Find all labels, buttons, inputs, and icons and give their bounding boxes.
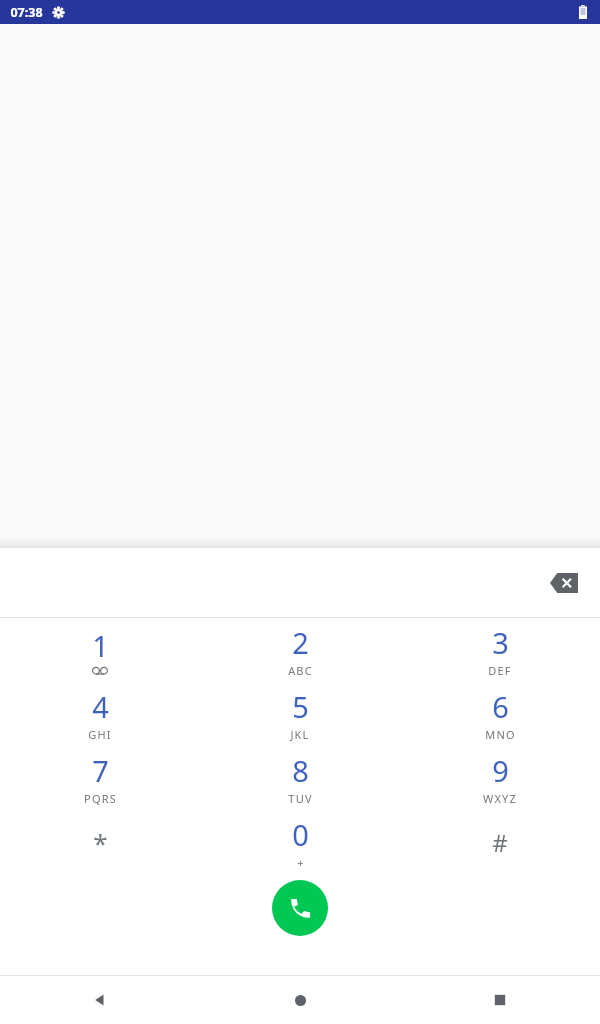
- staticText: 5: [292, 687, 309, 726]
- staticText: DEF: [488, 663, 512, 678]
- button[interactable]: 9: [400, 746, 600, 810]
- button[interactable]: 8: [200, 746, 400, 810]
- staticText: ABC: [288, 663, 313, 678]
- staticText: 3: [492, 623, 509, 662]
- button[interactable]: 1: [0, 618, 200, 682]
- button[interactable]: Recents: [400, 976, 600, 1024]
- button[interactable]: Backspace: [542, 563, 586, 603]
- staticText: MNO: [485, 727, 516, 742]
- staticText: 07:38: [10, 4, 43, 21]
- button[interactable]: #: [400, 810, 600, 874]
- button[interactable]: *: [0, 810, 200, 874]
- button[interactable]: 7: [0, 746, 200, 810]
- button[interactable]: 2: [200, 618, 400, 682]
- button[interactable]: 5: [200, 682, 400, 746]
- staticText: 0: [292, 815, 309, 854]
- staticText: PQRS: [84, 791, 117, 806]
- staticText: TUV: [288, 791, 313, 806]
- staticText: +: [297, 855, 304, 870]
- staticText: 1: [92, 626, 109, 665]
- staticText: #: [492, 826, 508, 859]
- button[interactable]: Home: [200, 976, 400, 1024]
- button[interactable]: 3: [400, 618, 600, 682]
- button[interactable]: Back: [0, 976, 200, 1024]
- staticText: WXYZ: [483, 791, 517, 806]
- button[interactable]: Call: [272, 880, 328, 936]
- staticText: *: [93, 825, 108, 860]
- button[interactable]: 6: [400, 682, 600, 746]
- staticText: 4: [92, 687, 109, 726]
- staticText: 6: [492, 687, 509, 726]
- staticText: 2: [292, 623, 309, 662]
- staticText: GHI: [88, 727, 112, 742]
- staticText: 9: [492, 751, 509, 790]
- button[interactable]: 4: [0, 682, 200, 746]
- staticText: 7: [92, 751, 109, 790]
- staticText: JKL: [290, 727, 310, 742]
- staticText: 8: [292, 751, 309, 790]
- button[interactable]: 0: [200, 810, 400, 874]
